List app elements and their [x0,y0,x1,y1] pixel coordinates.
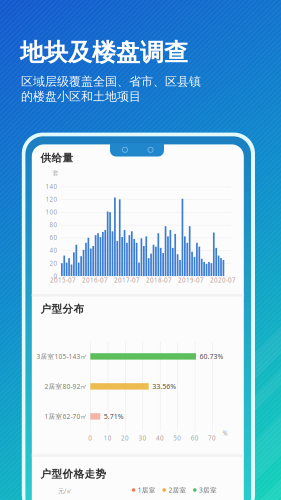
staticText: 5.71% [104,412,124,421]
staticText: 1居室62-70㎡ [44,412,87,421]
staticText: 40 [156,434,164,442]
staticText: 2017-07 [114,276,140,284]
staticText: 地块及楼盘调查 [20,37,188,68]
staticText: 3居室105-143㎡ [36,352,87,361]
staticText: 1居室 [138,485,156,494]
staticText: 3居室 [199,485,217,494]
staticText: 供给量 [40,151,73,165]
staticText: 60 [191,434,199,442]
staticText: 80 [49,221,57,229]
staticText: 的楼盘小区和土地项目 [21,89,141,104]
staticText: 元/㎡ [58,487,72,495]
staticText: 10 [104,434,112,442]
staticText: 20 [49,259,57,267]
staticText: 0 [53,272,57,280]
staticText: 2020-07 [210,276,236,284]
staticText: % [222,429,227,437]
staticText: 户型价格走势 [40,467,106,481]
staticText: 60.73% [199,352,223,361]
staticText: 2居室 [168,485,186,494]
staticText: 2018-07 [146,276,172,284]
staticText: 区域层级覆盖全国、省市、区县镇 [21,74,201,89]
staticText: 0 [88,434,92,442]
staticText: 户型分布 [40,302,84,316]
staticText: 2016-07 [82,276,108,284]
staticText: 2019-07 [178,276,204,284]
staticText: 2015-07 [50,276,76,284]
staticText: 40 [49,246,57,255]
staticText: 套 [52,169,58,177]
staticText: 2居室80-92㎡ [44,382,87,391]
staticText: 20 [121,434,129,442]
staticText: 120 [45,195,57,203]
staticText: 70 [208,434,216,442]
staticText: 140 [45,182,57,191]
staticText: 100 [45,208,57,216]
staticText: 60 [49,233,57,242]
staticText: 50 [173,434,181,442]
staticText: 33.56% [152,382,176,391]
staticText: 30 [138,434,146,442]
